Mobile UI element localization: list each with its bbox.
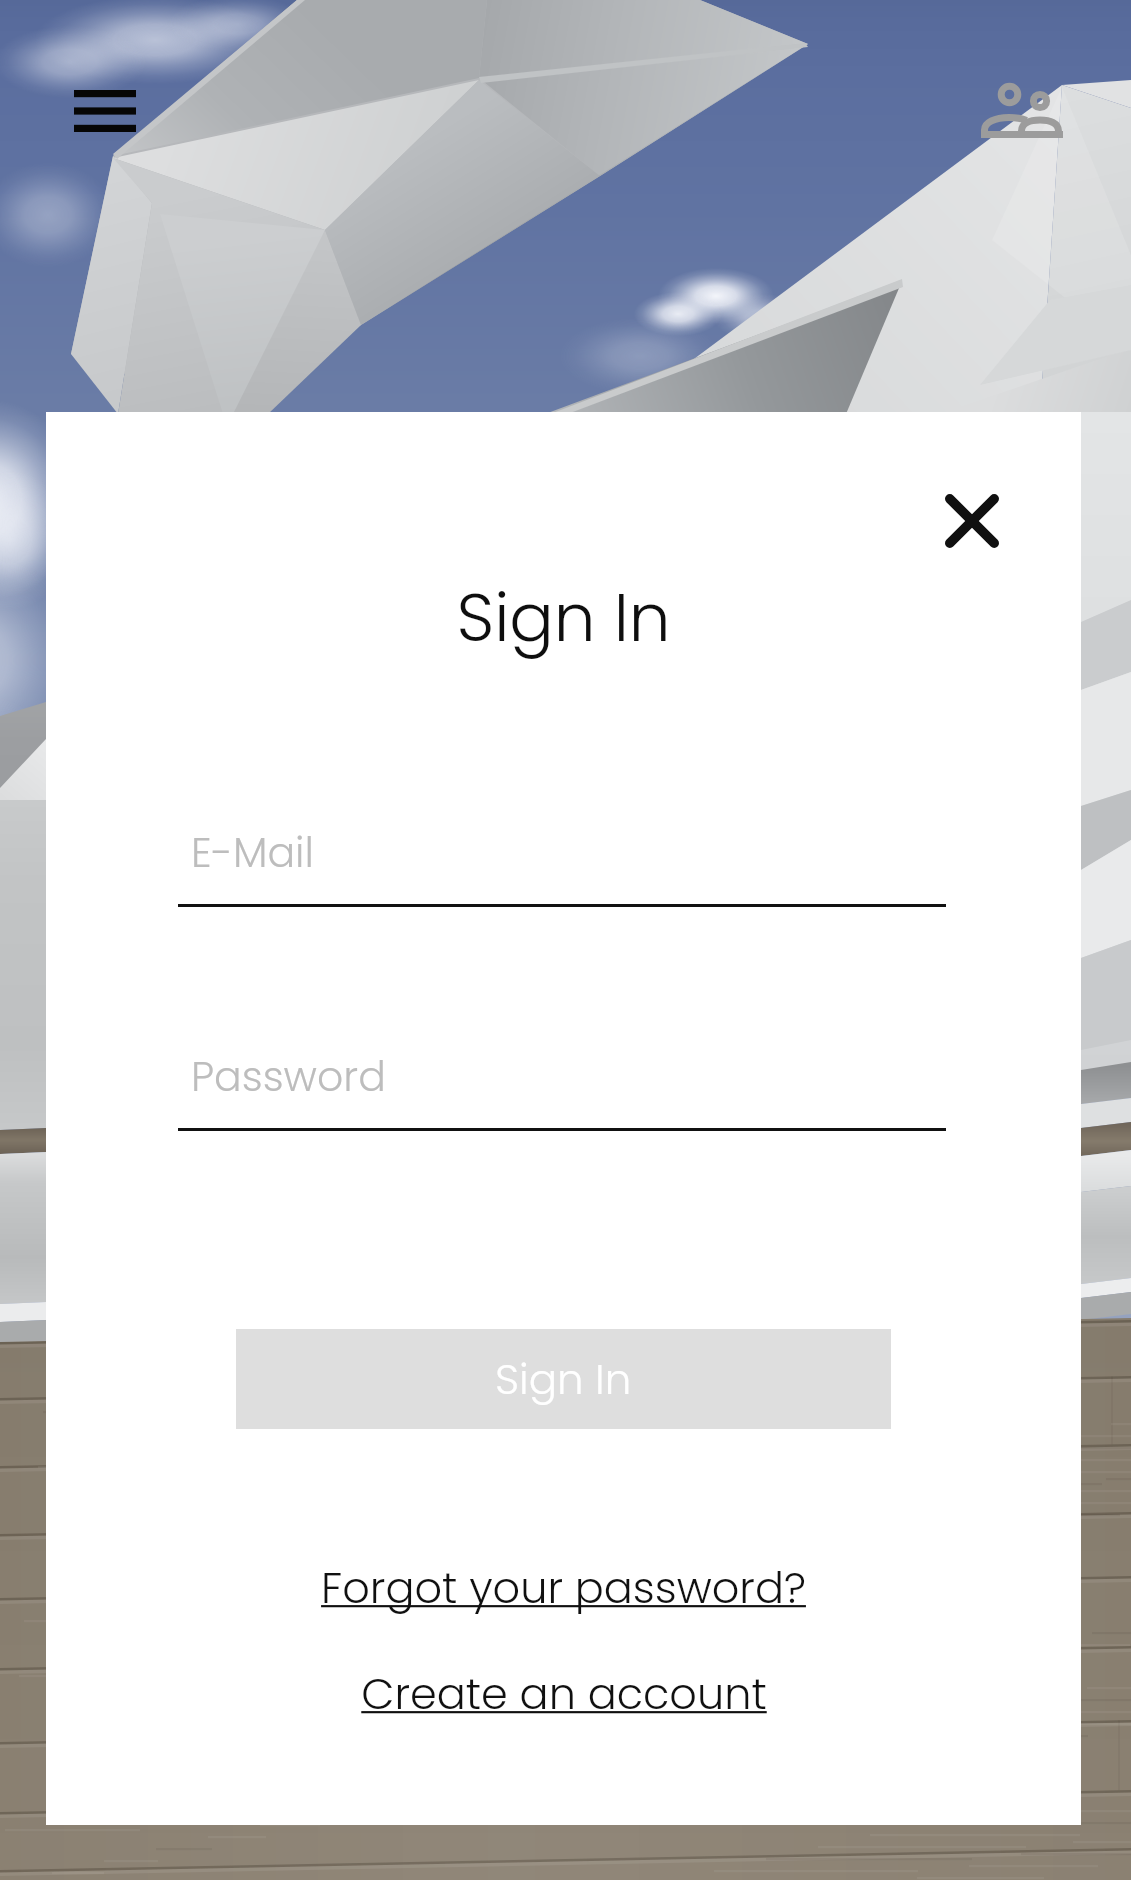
staticText: Sign In [46,572,1081,664]
staticText: Sign In [495,1350,632,1409]
button[interactable]: Open navigation menu [56,72,154,150]
button[interactable]: Create an account [46,1664,1081,1724]
staticText: Forgot your password? [321,1558,806,1618]
button[interactable]: Close [907,456,1037,586]
button[interactable]: Accounts [961,62,1083,158]
button[interactable]: Sign In [236,1329,891,1429]
staticText: E-Mail [191,824,314,881]
staticText: Password [191,1048,386,1105]
staticText: Create an account [361,1664,767,1724]
button[interactable]: Forgot your password? [46,1558,1081,1618]
